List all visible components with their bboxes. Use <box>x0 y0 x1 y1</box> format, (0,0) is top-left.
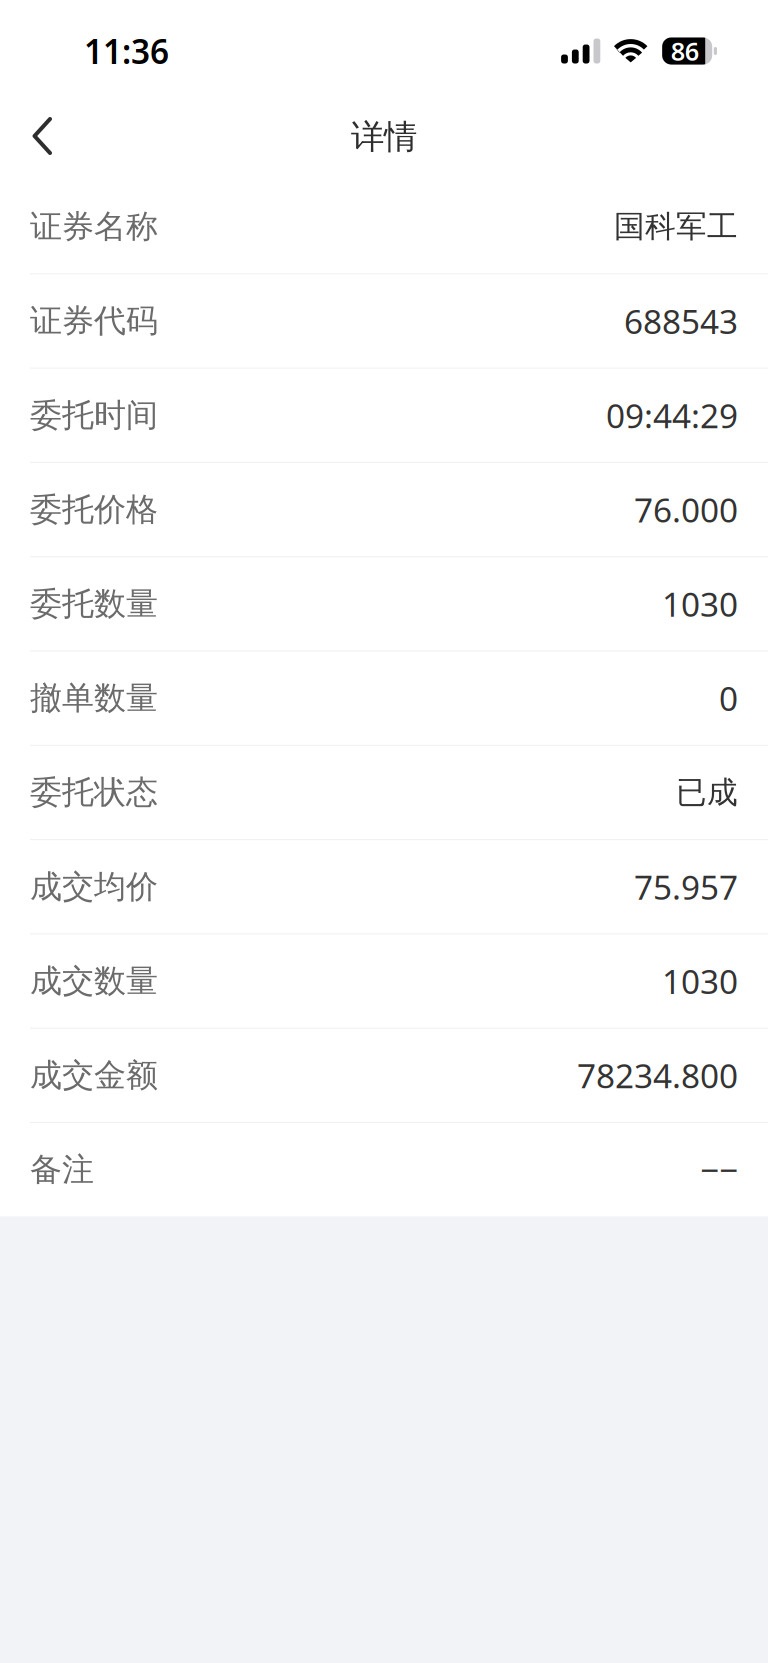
staticText: 国科军工 <box>614 208 738 245</box>
staticText: 1030 <box>662 959 738 1003</box>
staticText: 1030 <box>662 582 738 626</box>
staticText: 委托时间 <box>30 396 158 435</box>
staticText: 证券代码 <box>30 301 158 341</box>
staticText: 委托数量 <box>30 584 158 623</box>
staticText: 688543 <box>624 299 738 343</box>
staticText: 成交金额 <box>30 1056 158 1095</box>
staticText: 委托价格 <box>30 490 158 529</box>
staticText: 0 <box>719 676 738 720</box>
staticText: 成交均价 <box>30 867 158 906</box>
staticText: −− <box>700 1147 738 1192</box>
staticText: 证券名称 <box>30 207 158 246</box>
staticText: 详情 <box>351 116 417 157</box>
staticText: 备注 <box>30 1150 94 1189</box>
staticText: 86 <box>671 34 699 68</box>
staticText: 撤单数量 <box>30 678 158 718</box>
staticText: 已成 <box>676 774 738 811</box>
staticText: 11:36 <box>84 29 169 73</box>
staticText: 76.000 <box>634 487 738 532</box>
staticText: 09:44:29 <box>606 393 738 437</box>
button[interactable]: Back <box>0 92 80 180</box>
staticText: 75.957 <box>634 865 738 909</box>
staticText: 成交数量 <box>30 961 158 1001</box>
staticText: 78234.800 <box>577 1053 738 1097</box>
staticText: 委托状态 <box>30 773 158 812</box>
